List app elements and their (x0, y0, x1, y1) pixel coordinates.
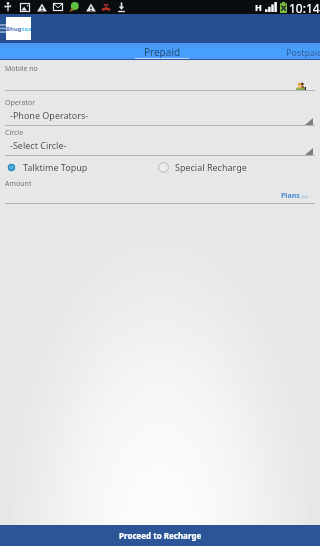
staticText: Bhug (6, 25, 22, 33)
button[interactable]: Special Recharge (158, 161, 247, 173)
button[interactable]: Prepaid (109, 43, 215, 60)
staticText: taan (22, 25, 31, 33)
button[interactable]: Pick contact (296, 82, 306, 90)
staticText: Plans (281, 191, 300, 201)
button[interactable]: -Phone Operators- (0, 108, 320, 125)
button[interactable]: -Select Circle- (0, 138, 320, 155)
staticText: -Select Circle- (10, 139, 67, 151)
button[interactable]: Plans (281, 191, 309, 201)
staticText: Talktime Topup (23, 161, 88, 173)
button[interactable]: Bhugtaan home (6, 17, 31, 40)
staticText: Circle (5, 128, 24, 138)
button[interactable]: Postpaid (213, 43, 320, 60)
staticText: Mobile no (5, 64, 38, 74)
staticText: >> (300, 193, 309, 201)
staticText: H (255, 1, 262, 13)
button[interactable]: Proceed to Recharge (0, 525, 320, 546)
button[interactable]: Talktime Topup (6, 161, 88, 173)
staticText: Operator (5, 98, 36, 108)
staticText: Special Recharge (175, 161, 247, 173)
button[interactable]: Open navigation drawer (0, 23, 6, 34)
staticText: 10:14 (289, 0, 320, 14)
staticText: Amount (5, 179, 32, 189)
staticText: Proceed to Recharge (119, 530, 202, 541)
staticText: Postpaid (286, 46, 320, 58)
staticText: Prepaid (144, 45, 181, 59)
staticText: -Phone Operators- (10, 109, 89, 121)
